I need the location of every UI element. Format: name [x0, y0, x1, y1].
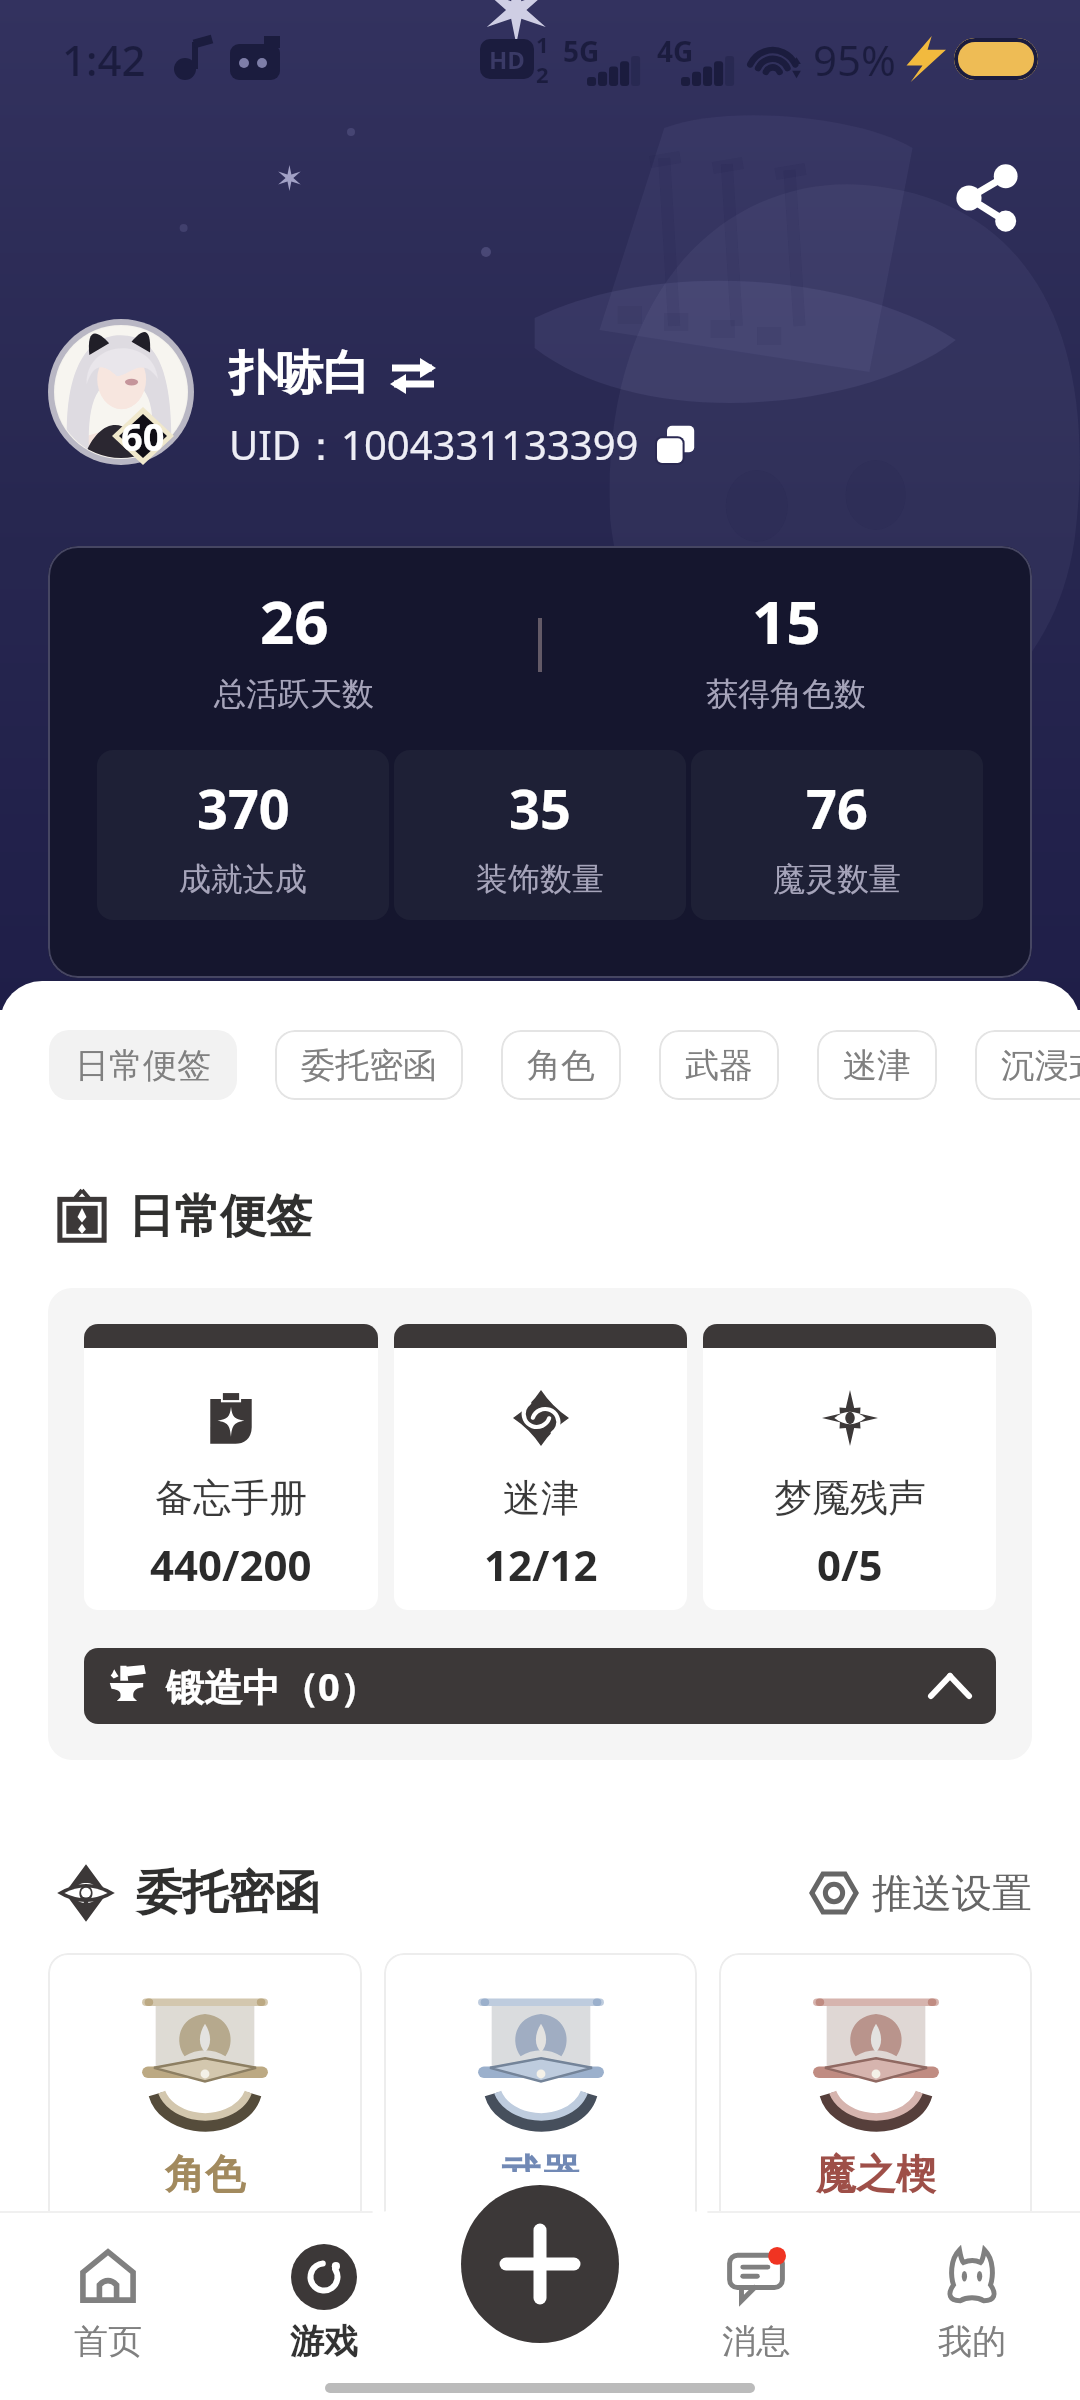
staticText: 游戏 [290, 2320, 358, 2363]
button[interactable]: 锻造中（0） [84, 1648, 996, 1724]
button[interactable]: 魔之楔 [719, 1953, 1032, 2273]
button[interactable]: 迷津 [817, 1030, 937, 1100]
staticText: 总活跃天数 [214, 674, 374, 714]
button[interactable]: Add [461, 2185, 619, 2343]
button[interactable]: 消息 [648, 2244, 864, 2363]
staticText: 角色 [165, 2149, 245, 2199]
button[interactable]: 游戏 [216, 2244, 432, 2363]
button[interactable]: Share [940, 150, 1036, 246]
staticText: 76 [806, 771, 868, 845]
button[interactable]: Switch account [390, 356, 436, 392]
button[interactable]: 26 [48, 580, 540, 714]
staticText: 2 [536, 59, 549, 89]
button[interactable]: 首页 [0, 2244, 216, 2363]
staticText: 锻造中（0） [166, 1660, 378, 1712]
staticText: 武器 [501, 2149, 581, 2199]
button[interactable]: 备忘手册 [84, 1324, 378, 1610]
staticText: 95% [813, 31, 896, 88]
staticText: 迷津 [503, 1474, 579, 1522]
staticText: 消息 [722, 2320, 790, 2363]
staticText: 440/200 [150, 1536, 312, 1593]
button[interactable]: 迷津 [394, 1324, 687, 1610]
staticText: 4G [657, 32, 694, 70]
staticText: 370 [197, 771, 290, 845]
button[interactable]: 推送设置 [810, 1868, 1032, 1918]
staticText: 委托密函 [136, 1864, 320, 1922]
staticText: 12/12 [484, 1536, 598, 1593]
staticText: 成就达成 [179, 859, 307, 899]
staticText: 60 [121, 410, 165, 462]
staticText: 5G [563, 32, 600, 70]
button[interactable]: 沉浸式 [975, 1030, 1080, 1100]
button[interactable]: 日常便签 [49, 1030, 237, 1100]
staticText: 装饰数量 [476, 859, 604, 899]
button[interactable]: 35 [394, 750, 686, 920]
staticText: UID：1004331133399 [229, 417, 639, 472]
staticText: 沉浸式 [1001, 1044, 1080, 1087]
staticText: 角色 [527, 1044, 595, 1087]
staticText: 委托密函 [301, 1044, 437, 1087]
button[interactable]: 15 [540, 580, 1032, 714]
button[interactable]: 我的 [864, 2244, 1080, 2363]
staticText: 26 [260, 580, 329, 662]
button[interactable]: 角色 [48, 1953, 362, 2273]
staticText: 扑哧白 [229, 344, 370, 403]
button[interactable]: 梦魇残声 [703, 1324, 996, 1610]
staticText: 获得角色数 [706, 674, 866, 714]
staticText: 日常便签 [128, 1188, 312, 1246]
staticText: HD [489, 43, 525, 76]
staticText: 武器 [685, 1044, 753, 1087]
button[interactable]: 武器 [659, 1030, 779, 1100]
staticText: 备忘手册 [155, 1474, 307, 1522]
staticText: 日常便签 [75, 1044, 211, 1087]
button[interactable]: 370 [97, 750, 389, 920]
button[interactable]: 角色 [501, 1030, 621, 1100]
staticText: 1 [536, 29, 549, 59]
staticText: 迷津 [843, 1044, 911, 1087]
button[interactable]: 76 [691, 750, 983, 920]
staticText: 0/5 [817, 1536, 883, 1593]
staticText: 魔之楔 [816, 2149, 936, 2199]
staticText: 梦魇残声 [774, 1474, 926, 1522]
staticText: 1:42 [62, 31, 146, 88]
button[interactable]: 委托密函 [275, 1030, 463, 1100]
staticText: 推送设置 [872, 1868, 1032, 1918]
staticText: 首页 [74, 2320, 142, 2363]
staticText: 我的 [938, 2320, 1006, 2363]
staticText: 35 [509, 771, 571, 845]
button[interactable]: Copy UID [655, 425, 695, 465]
button[interactable]: 武器 [384, 1953, 697, 2273]
staticText: 魔灵数量 [773, 859, 901, 899]
staticText: 15 [752, 580, 821, 662]
